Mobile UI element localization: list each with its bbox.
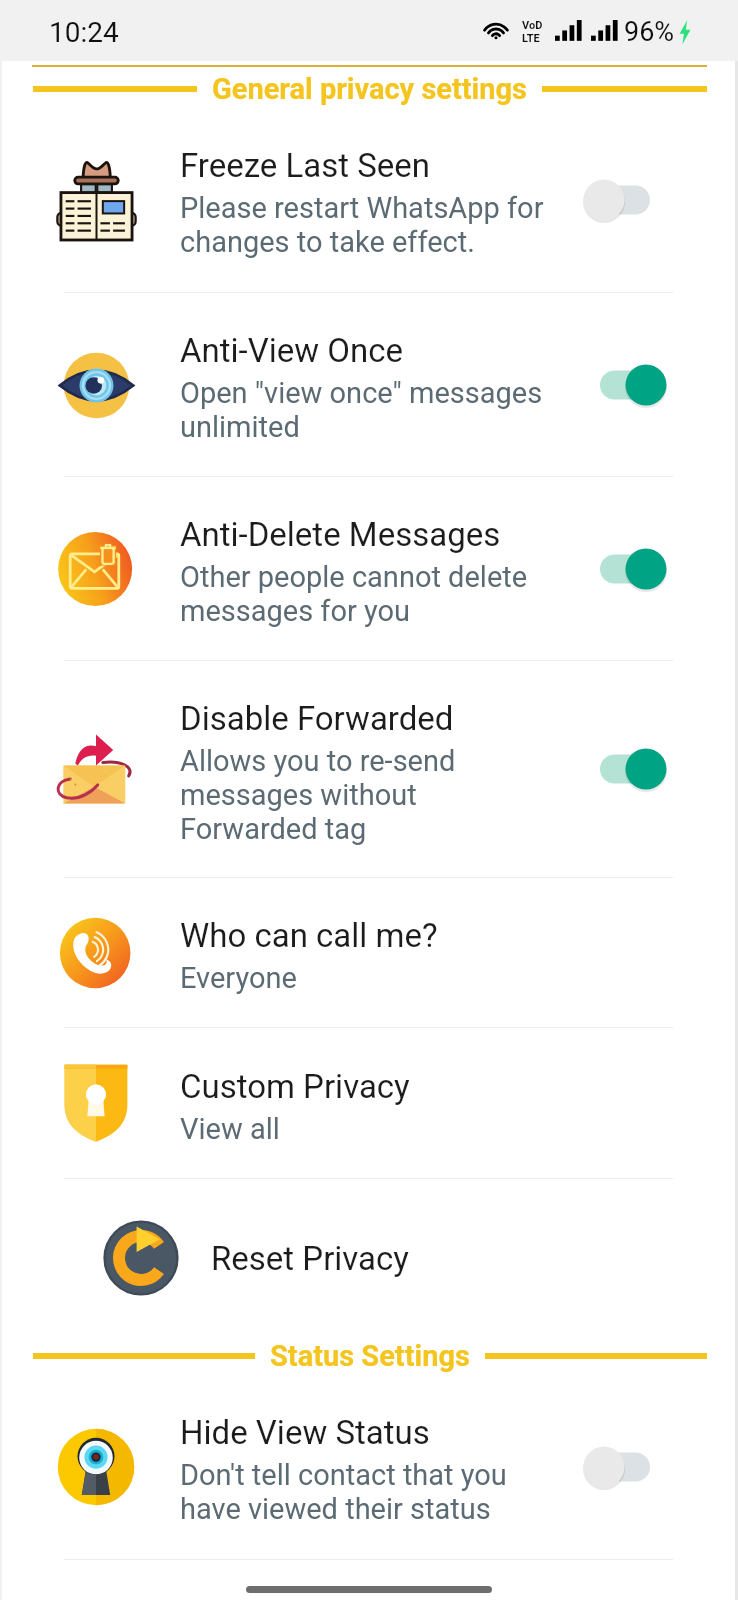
staticText: 96%	[624, 16, 675, 48]
staticText: Don't tell contact that you have viewed …	[180, 1458, 552, 1526]
staticText: VoD	[522, 19, 543, 32]
staticText: View all	[180, 1112, 280, 1146]
staticText: Other people cannot delete messages for …	[180, 560, 552, 628]
button[interactable]: Reset Privacy	[0, 1179, 738, 1331]
button[interactable]: Toggle off	[583, 1444, 653, 1490]
staticText: Status Settings	[270, 1339, 470, 1373]
staticText: Please restart WhatsApp for changes to t…	[180, 191, 552, 259]
staticText: Disable Forwarded	[180, 699, 454, 738]
button[interactable]: Hide View Status	[0, 1374, 738, 1559]
button[interactable]: Anti-View Once	[0, 293, 738, 476]
staticText: General privacy settings	[212, 72, 527, 106]
staticText: Open "view once" messages unlimited	[180, 376, 552, 444]
staticText: Everyone	[180, 961, 297, 995]
button[interactable]: Toggle on	[583, 746, 653, 792]
staticText: LTE	[522, 32, 540, 45]
staticText: Freeze Last Seen	[180, 146, 431, 185]
staticText: Hide View Status	[180, 1413, 430, 1452]
button[interactable]: Toggle on	[583, 362, 653, 408]
staticText: 10:24	[49, 16, 119, 49]
button[interactable]: Toggle on	[583, 546, 653, 592]
button[interactable]: Freeze Last Seen	[0, 107, 738, 292]
button[interactable]: Anti-Delete Messages	[0, 477, 738, 660]
button[interactable]: Disable Forwarded	[0, 661, 738, 877]
staticText: Allows you to re-send messages without F…	[180, 744, 552, 846]
staticText: Who can call me?	[180, 916, 438, 955]
button[interactable]: Toggle off	[583, 177, 653, 223]
staticText: Anti-Delete Messages	[180, 515, 501, 554]
staticText: Custom Privacy	[180, 1067, 410, 1106]
button[interactable]: Who can call me?	[0, 878, 738, 1027]
button[interactable]: Custom Privacy	[0, 1028, 738, 1178]
staticText: Anti-View Once	[180, 331, 403, 370]
staticText: Reset Privacy	[211, 1239, 409, 1278]
